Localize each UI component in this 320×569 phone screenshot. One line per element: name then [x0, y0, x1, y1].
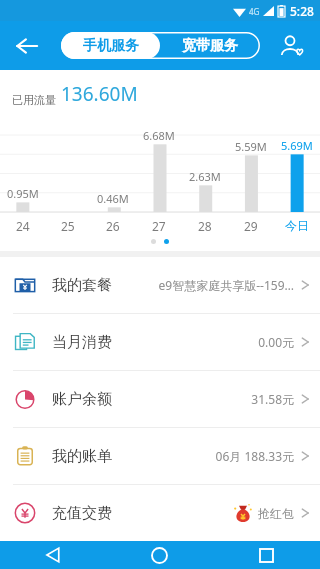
- staticText: 5.69M: [281, 138, 313, 153]
- button[interactable]: 我的账单: [0, 428, 320, 484]
- button[interactable]: 充值交费: [0, 485, 320, 541]
- staticText: 31.58元: [251, 391, 294, 407]
- staticText: 5.59M: [235, 139, 267, 154]
- staticText: 25: [61, 218, 75, 234]
- staticText: 26: [106, 218, 120, 234]
- staticText: 账户余额: [52, 390, 112, 409]
- staticText: 当月消费: [52, 333, 112, 352]
- button[interactable]: 我的套餐: [0, 257, 320, 313]
- staticText: 抢红包: [258, 506, 294, 521]
- button[interactable]: 当月消费: [0, 314, 320, 370]
- button[interactable]: Recents: [213, 541, 320, 569]
- staticText: 28: [198, 218, 212, 234]
- staticText: 我的套餐: [52, 276, 112, 295]
- button[interactable]: 手机服务: [61, 32, 160, 59]
- staticText: 宽带服务: [182, 37, 238, 55]
- staticText: 4G: [249, 6, 260, 17]
- staticText: 0.46M: [97, 191, 129, 206]
- staticText: 2.63M: [189, 169, 221, 184]
- staticText: 已用流量: [12, 93, 56, 107]
- button[interactable]: Back: [6, 25, 48, 67]
- staticText: 5:28: [290, 3, 314, 19]
- staticText: 06月 188.33元: [215, 448, 294, 464]
- button[interactable]: Home: [106, 541, 213, 569]
- staticText: 我的账单: [52, 447, 112, 466]
- button[interactable]: 账户余额: [0, 371, 320, 427]
- staticText: 27: [152, 218, 166, 234]
- staticText: 136.60M: [61, 81, 138, 107]
- staticText: 手机服务: [83, 37, 139, 55]
- button[interactable]: 宽带服务: [160, 32, 260, 59]
- staticText: 6.68M: [143, 128, 175, 143]
- button[interactable]: Back: [0, 541, 106, 569]
- staticText: 0.00元: [258, 334, 294, 350]
- staticText: e9智慧家庭共享版--159…: [158, 277, 294, 293]
- staticText: 今日: [285, 218, 309, 233]
- button[interactable]: Account: [271, 25, 313, 67]
- staticText: 29: [244, 218, 258, 234]
- staticText: 0.95M: [7, 186, 39, 201]
- staticText: 充值交费: [52, 504, 112, 523]
- staticText: 24: [16, 218, 30, 234]
